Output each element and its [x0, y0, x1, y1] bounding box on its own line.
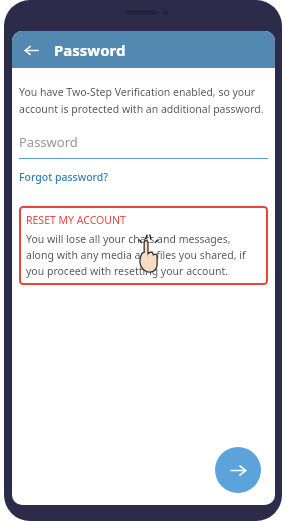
staticText: You have Two-Step Verification enabled, …: [19, 85, 268, 116]
staticText: Password: [54, 40, 126, 60]
button[interactable]: Password: [19, 133, 268, 159]
staticText: Password: [19, 133, 78, 151]
button[interactable]: Back: [18, 37, 44, 63]
staticText: You will lose all your chats and message…: [26, 232, 261, 278]
button[interactable]: Next: [215, 447, 261, 493]
button[interactable]: Forgot password?: [19, 170, 109, 184]
staticText: RESET MY ACCOUNT: [26, 213, 126, 227]
staticText: Forgot password?: [19, 170, 109, 184]
button[interactable]: RESET MY ACCOUNT: [19, 206, 268, 285]
